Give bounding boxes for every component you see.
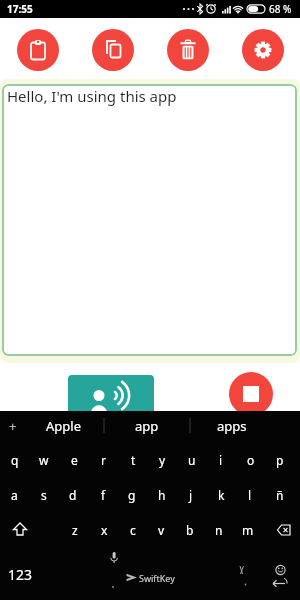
staticText: w <box>39 452 49 468</box>
button[interactable]: d <box>60 483 86 507</box>
staticText: y <box>159 452 166 468</box>
button[interactable]: 123 <box>7 562 33 586</box>
button[interactable]: l <box>237 483 263 507</box>
button[interactable]: g <box>119 483 145 507</box>
staticText: j <box>189 487 193 503</box>
button[interactable]: Apple <box>22 411 104 440</box>
staticText: 123 <box>8 565 33 584</box>
button[interactable]: q <box>2 448 28 472</box>
staticText: Apple <box>46 417 81 435</box>
button[interactable]: j <box>178 483 204 507</box>
button[interactable]: w <box>31 448 57 472</box>
staticText: o <box>247 452 255 468</box>
button[interactable] <box>17 29 59 71</box>
staticText: q <box>11 452 19 468</box>
button[interactable]: f <box>90 483 116 507</box>
staticText: s <box>41 487 47 503</box>
staticText: Hello, I'm using this app <box>7 86 177 106</box>
staticText: a <box>11 487 18 503</box>
staticText: app <box>135 417 159 435</box>
button[interactable]: s <box>31 483 57 507</box>
button[interactable]: h <box>149 483 175 507</box>
button[interactable]: u <box>179 448 205 472</box>
button[interactable]: t <box>120 448 146 472</box>
button[interactable] <box>92 29 134 71</box>
button[interactable]: SwiftKey <box>139 570 179 585</box>
staticText: u <box>188 452 196 468</box>
button[interactable]: k <box>208 483 234 507</box>
staticText: x <box>101 522 108 538</box>
button[interactable]: ñ <box>267 483 293 507</box>
staticText: 17:55 <box>7 2 33 16</box>
button[interactable]: c <box>120 518 146 542</box>
staticText: apps <box>217 417 247 435</box>
button[interactable]: app <box>104 411 190 440</box>
button[interactable]: x <box>91 518 117 542</box>
button[interactable]: e <box>61 448 87 472</box>
button[interactable]: y <box>149 448 175 472</box>
button[interactable] <box>167 29 209 71</box>
button[interactable]: apps <box>190 411 274 440</box>
staticText: SwiftKey <box>139 572 175 584</box>
staticText: ñ <box>276 487 284 503</box>
button[interactable]: + <box>0 411 26 440</box>
button[interactable]: Hello, I'm using this app <box>2 84 297 356</box>
button[interactable] <box>68 375 154 411</box>
staticText: m <box>242 522 254 538</box>
staticText: k <box>218 487 225 503</box>
staticText: 68 % <box>269 2 292 16</box>
button[interactable]: a <box>1 483 27 507</box>
staticText: l <box>248 487 252 503</box>
staticText: b <box>186 522 194 538</box>
staticText: c <box>130 522 136 538</box>
button[interactable]: i <box>208 448 234 472</box>
staticText: t <box>131 452 136 468</box>
button[interactable]: m <box>235 518 261 542</box>
button[interactable]: z <box>62 518 88 542</box>
button[interactable] <box>242 29 284 71</box>
button[interactable]: o <box>238 448 264 472</box>
button[interactable]: n <box>206 518 232 542</box>
staticText: v <box>158 522 165 538</box>
staticText: p <box>276 452 284 468</box>
button[interactable]: b <box>177 518 203 542</box>
button[interactable]: v <box>148 518 174 542</box>
staticText: d <box>69 487 77 503</box>
button[interactable] <box>229 372 273 411</box>
staticText: f <box>101 487 106 503</box>
staticText: + <box>9 417 17 435</box>
staticText: e <box>71 452 78 468</box>
button[interactable]: p <box>267 448 293 472</box>
staticText: r <box>101 452 106 468</box>
button[interactable]: r <box>90 448 116 472</box>
staticText: h <box>158 487 166 503</box>
staticText: g <box>128 487 136 503</box>
staticText: i <box>219 452 223 468</box>
staticText: n <box>215 522 223 538</box>
staticText: z <box>72 522 78 538</box>
